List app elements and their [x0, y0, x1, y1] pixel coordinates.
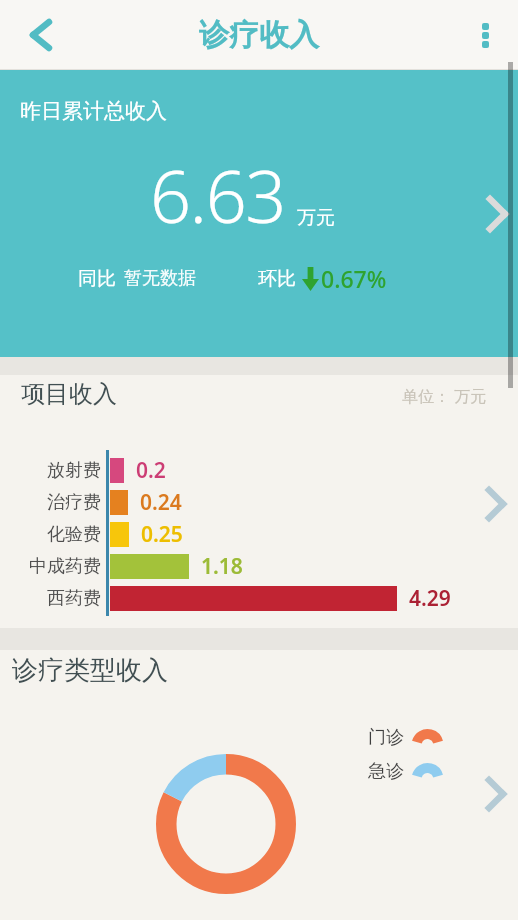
staticText: 4.29 [409, 584, 451, 613]
staticText: 0.25 [141, 520, 183, 549]
staticText: 急诊 [368, 760, 404, 783]
button[interactable] [463, 0, 508, 70]
staticText: 同比 [78, 267, 116, 291]
staticText: 万元 [297, 206, 335, 230]
staticText: 环比 [258, 267, 296, 291]
staticText: 6.63 [150, 146, 285, 244]
staticText: 1.18 [201, 552, 243, 581]
staticText: 诊疗收入 [199, 16, 319, 54]
staticText: 单位： 万元 [402, 385, 487, 407]
staticText: 放射费 [47, 459, 101, 482]
staticText: 中成药费 [29, 555, 101, 578]
staticText: 暂无数据 [124, 267, 196, 290]
button[interactable]: 昨日累计总收入 [0, 70, 518, 357]
staticText: 0.67% [321, 263, 387, 294]
staticText: 治疗费 [47, 491, 101, 514]
staticText: 0.24 [140, 488, 182, 517]
staticText: 0.2 [136, 456, 166, 485]
staticText: 诊疗类型收入 [12, 654, 168, 687]
staticText: 昨日累计总收入 [20, 98, 167, 124]
staticText: 项目收入 [21, 379, 117, 409]
staticText: 化验费 [47, 523, 101, 546]
staticText: 门诊 [368, 726, 404, 749]
staticText: 西药费 [47, 587, 101, 610]
button[interactable]: 项目收入 [0, 375, 518, 628]
button[interactable] [0, 0, 70, 70]
button[interactable]: 诊疗类型收入 [0, 650, 518, 920]
